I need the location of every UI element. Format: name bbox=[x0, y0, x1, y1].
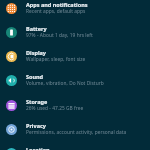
button[interactable]: Privacy bbox=[0, 117, 150, 141]
staticText: 97% - About 1 day, 19 hrs left bbox=[26, 32, 93, 39]
staticText: Display bbox=[26, 49, 46, 56]
staticText: Privacy bbox=[26, 122, 46, 129]
staticText: Battery bbox=[26, 25, 47, 32]
staticText: Location bbox=[26, 146, 50, 150]
button[interactable]: Apps and notifications bbox=[0, 0, 150, 20]
button[interactable]: Sound bbox=[0, 68, 150, 92]
button[interactable]: Storage bbox=[0, 93, 150, 117]
staticText: Storage bbox=[26, 98, 48, 105]
button[interactable]: Location bbox=[0, 141, 150, 150]
staticText: Volume, vibration, Do Not Disturb bbox=[26, 80, 104, 87]
staticText: Wallpaper, sleep, font size bbox=[26, 56, 86, 63]
button[interactable]: Battery bbox=[0, 20, 150, 44]
staticText: Recent apps, default apps bbox=[26, 8, 86, 15]
staticText: Permissions, account activity, personal … bbox=[26, 129, 127, 136]
staticText: Sound bbox=[26, 73, 44, 80]
button[interactable]: Display bbox=[0, 44, 150, 68]
staticText: Apps and notifications bbox=[26, 1, 88, 8]
staticText: 26% used - 47.25 GB free bbox=[26, 105, 84, 112]
